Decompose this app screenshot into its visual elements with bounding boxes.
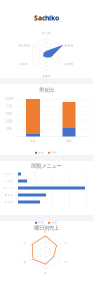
staticText: カレー [4, 172, 13, 176]
staticText: 当店 [51, 221, 57, 224]
staticText: 回転率 [19, 62, 28, 66]
staticText: パスタ [4, 179, 13, 183]
staticText: ラーメン [3, 186, 15, 190]
staticText: 100% [5, 97, 13, 101]
staticText: 水 [64, 260, 67, 264]
button[interactable]: Sachiko [0, 11, 93, 25]
staticText: 男性 [51, 151, 57, 154]
staticText: 女性 [30, 139, 36, 143]
staticText: 50% [6, 112, 12, 116]
staticText: 木 [44, 271, 47, 275]
staticText: 25% [6, 120, 12, 123]
staticText: 土 [23, 241, 26, 245]
staticText: 0% [7, 127, 11, 131]
staticText: 男女比 [39, 87, 54, 93]
staticText: 閲覧メニュー [31, 163, 61, 169]
staticText: 曜日別売上 [34, 225, 59, 231]
staticText: 売上高 [42, 31, 51, 35]
staticText: 75% [6, 105, 12, 108]
staticText: 来客数 [64, 62, 73, 66]
staticText: 原価率 [42, 74, 51, 78]
staticText: 金 [23, 260, 26, 264]
staticText: 丼もの [4, 193, 13, 197]
staticText: 女性 [38, 151, 44, 154]
staticText: Sachiko [34, 14, 59, 22]
staticText: 火 [64, 241, 67, 245]
staticText: 平均 [38, 221, 44, 224]
staticText: 客単価 [64, 44, 73, 47]
staticText: サラダ [4, 200, 13, 204]
staticText: 男性 [66, 139, 72, 143]
staticText: 滞在時間 [18, 44, 30, 47]
staticText: 月 [44, 230, 47, 234]
